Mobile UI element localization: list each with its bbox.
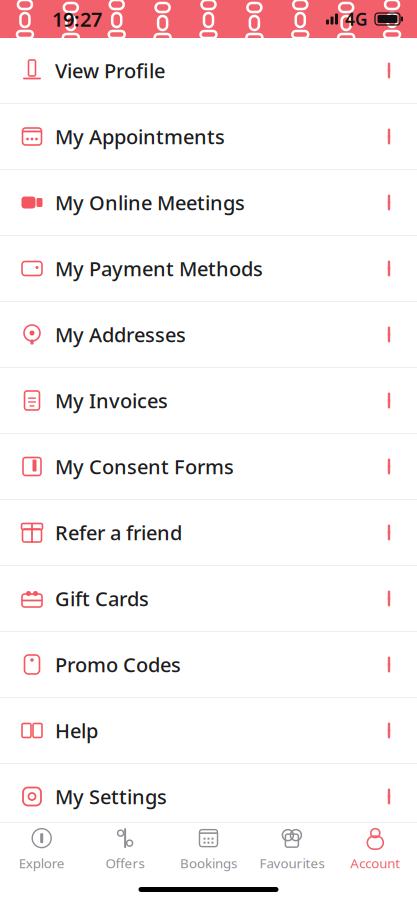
button[interactable]: Explore — [0, 825, 83, 873]
staticText: Bookings — [180, 854, 237, 872]
button[interactable]: Help — [0, 698, 417, 764]
staticText: 19:27 — [52, 6, 102, 32]
staticText: Help — [55, 717, 98, 744]
staticText: My Consent Forms — [55, 453, 234, 480]
staticText: Gift Cards — [55, 585, 149, 612]
button[interactable]: Promo Codes — [0, 632, 417, 698]
button[interactable]: My Addresses — [0, 302, 417, 368]
staticText: My Invoices — [55, 387, 168, 414]
staticText: My Online Meetings — [55, 189, 245, 216]
button[interactable]: My Consent Forms — [0, 434, 417, 500]
staticText: Promo Codes — [55, 651, 181, 678]
button[interactable]: Favourites — [250, 825, 334, 873]
staticText: Explore — [19, 854, 65, 872]
button[interactable]: My Invoices — [0, 368, 417, 434]
button[interactable]: Offers — [83, 825, 167, 873]
button[interactable]: My Payment Methods — [0, 236, 417, 302]
staticText: 4G — [345, 7, 368, 30]
staticText: My Appointments — [55, 123, 225, 150]
staticText: My Payment Methods — [55, 255, 263, 282]
staticText: Favourites — [259, 854, 324, 872]
button[interactable]: My Appointments — [0, 104, 417, 170]
staticText: View Profile — [55, 57, 165, 84]
staticText: Account — [350, 854, 400, 872]
staticText: My Addresses — [55, 321, 186, 348]
button[interactable]: Refer a friend — [0, 500, 417, 566]
button[interactable]: Account — [334, 825, 417, 873]
staticText: Offers — [106, 854, 145, 872]
button[interactable]: My Settings — [0, 764, 417, 830]
button[interactable]: Bookings — [167, 825, 250, 873]
staticText: Refer a friend — [55, 519, 182, 546]
button[interactable]: View Profile — [0, 38, 417, 104]
button[interactable]: My Online Meetings — [0, 170, 417, 236]
button[interactable]: Gift Cards — [0, 566, 417, 632]
staticText: My Settings — [55, 783, 167, 810]
